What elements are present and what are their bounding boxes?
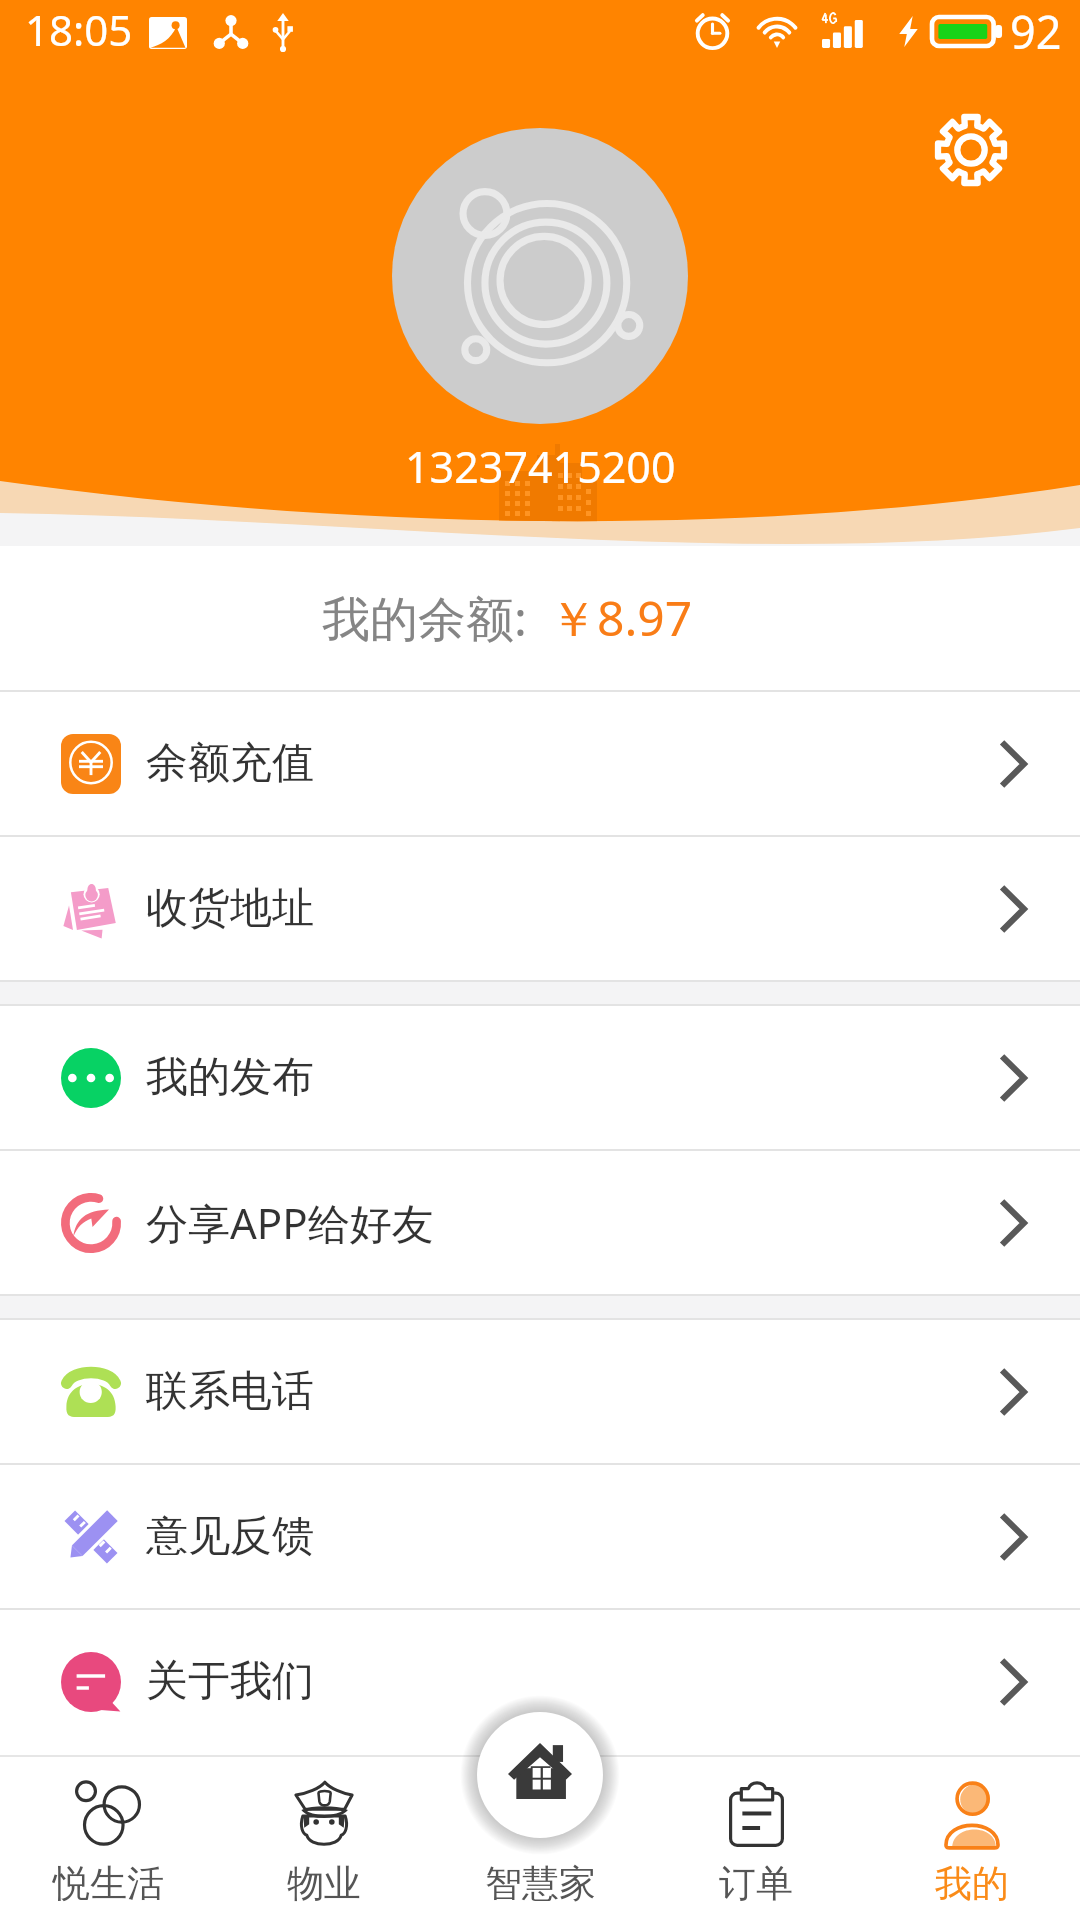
staticText: 13237415200 (405, 437, 676, 496)
button[interactable]: 意见反馈 (0, 1465, 1080, 1608)
staticText: 意见反馈 (146, 1510, 314, 1563)
button[interactable]: 收货地址 (0, 837, 1080, 980)
button[interactable]: 订单 (648, 1755, 864, 1920)
staticText: 收货地址 (146, 882, 314, 935)
staticText: 智慧家 (485, 1860, 596, 1907)
button[interactable]: 余额充值 (0, 692, 1080, 835)
staticText: 订单 (719, 1860, 793, 1907)
staticText: 我的 (935, 1860, 1009, 1907)
staticText: 关于我们 (146, 1655, 314, 1708)
button[interactable]: 智慧家 (432, 1755, 648, 1920)
button[interactable]: 分享APP给好友 (0, 1151, 1080, 1294)
staticText: ￥8.97 (549, 585, 693, 651)
button[interactable]: Settings (916, 95, 1026, 205)
staticText: 悦生活 (53, 1860, 164, 1907)
button[interactable]: 关于我们 (0, 1610, 1080, 1753)
button[interactable]: 我的发布 (0, 1006, 1080, 1149)
button[interactable]: Avatar (392, 128, 688, 424)
staticText: 物业 (287, 1860, 361, 1907)
button[interactable]: 智慧家 Home (477, 1712, 603, 1838)
staticText: 92 (1010, 1, 1062, 62)
staticText: 联系电话 (146, 1365, 314, 1418)
staticText: 我的余额: (322, 585, 527, 651)
staticText: 余额充值 (146, 737, 314, 790)
staticText: 18:05 (25, 1, 133, 58)
staticText: 我的发布 (146, 1051, 314, 1104)
button[interactable]: 我的 (864, 1755, 1080, 1920)
button[interactable]: 联系电话 (0, 1320, 1080, 1463)
staticText: 分享APP给好友 (146, 1194, 434, 1251)
button[interactable]: 悦生活 (0, 1755, 216, 1920)
button[interactable]: 物业 (216, 1755, 432, 1920)
